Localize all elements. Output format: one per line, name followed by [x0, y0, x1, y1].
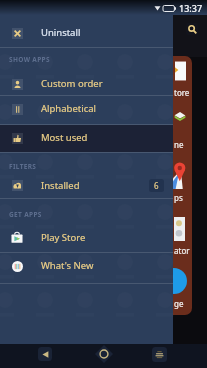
button[interactable]: Back	[38, 347, 52, 361]
button[interactable]: Search	[186, 23, 198, 35]
staticText: ne	[174, 139, 184, 150]
staticText: ge	[174, 298, 184, 309]
button[interactable]: Play Store	[0, 223, 173, 251]
staticText: Play Store	[41, 231, 86, 244]
button[interactable]: Most used	[0, 124, 173, 151]
button[interactable]: Installed	[0, 172, 173, 198]
button[interactable]: What's New	[0, 250, 173, 281]
button[interactable]: Recent apps	[152, 347, 167, 362]
staticText: ator	[174, 245, 190, 256]
staticText: GET APPS	[9, 210, 42, 219]
staticText: FILTERS	[9, 162, 37, 171]
staticText: Installed	[41, 179, 80, 192]
staticText: tore	[174, 87, 190, 98]
staticText: Alphabetical	[41, 102, 96, 115]
staticText: 6	[154, 180, 159, 191]
button[interactable]: Alphabetical	[0, 94, 173, 123]
button[interactable]: Uninstall	[0, 16, 173, 49]
staticText: SHOW APPS	[9, 55, 50, 64]
staticText: Custom order	[41, 77, 103, 90]
button[interactable]: Custom order	[0, 69, 173, 98]
button[interactable]: Home	[95, 345, 113, 363]
staticText: ps	[174, 192, 183, 203]
staticText: Most used	[41, 131, 88, 144]
staticText: Uninstall	[41, 26, 81, 39]
staticText: What's New	[41, 259, 94, 272]
staticText: 13:37	[179, 2, 203, 14]
